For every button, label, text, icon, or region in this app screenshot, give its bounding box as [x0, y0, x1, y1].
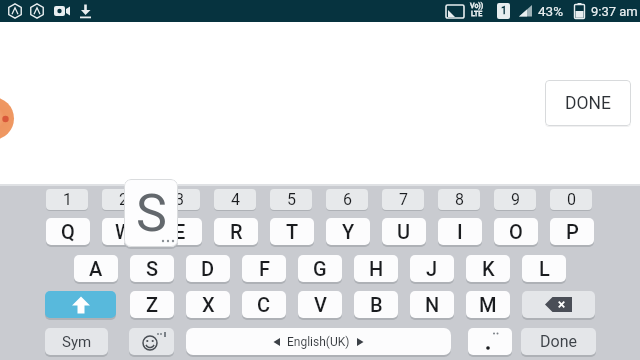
- staticText: L: [539, 257, 550, 280]
- staticText: V: [314, 293, 327, 316]
- button[interactable]: 1: [46, 189, 88, 210]
- staticText: DONE: [565, 93, 611, 114]
- button[interactable]: Done: [521, 328, 596, 355]
- staticText: English(UK): [287, 335, 350, 349]
- staticText: K: [482, 257, 495, 280]
- button[interactable]: P: [550, 218, 594, 245]
- button[interactable]: English(UK): [186, 328, 451, 355]
- button[interactable]: 0: [550, 189, 592, 210]
- staticText: 9:37 am: [591, 4, 638, 19]
- staticText: S: [136, 183, 167, 244]
- button[interactable]: 2: [102, 189, 144, 210]
- button[interactable]: U: [382, 218, 426, 245]
- staticText: 5: [287, 190, 296, 209]
- button[interactable]: Y: [326, 218, 370, 245]
- button[interactable]: A: [74, 255, 118, 282]
- staticText: 1: [501, 5, 507, 17]
- staticText: Done: [540, 332, 577, 351]
- staticText: R: [230, 220, 243, 243]
- staticText: 8: [455, 190, 464, 209]
- staticText: S: [146, 257, 159, 280]
- button[interactable]: G: [298, 255, 342, 282]
- button[interactable]: O: [494, 218, 538, 245]
- button[interactable]: 9: [494, 189, 536, 210]
- staticText: B: [370, 293, 383, 316]
- staticText: T: [286, 220, 299, 243]
- button[interactable]: Z: [130, 291, 174, 318]
- button[interactable]: D: [186, 255, 230, 282]
- staticText: LTE: [471, 10, 483, 18]
- staticText: 1: [63, 190, 72, 209]
- button[interactable]: F: [242, 255, 286, 282]
- staticText: J: [426, 257, 438, 280]
- staticText: O: [509, 220, 523, 243]
- button[interactable]: V: [298, 291, 342, 318]
- staticText: 43%: [538, 3, 564, 19]
- button[interactable]: [129, 328, 174, 355]
- staticText: M: [479, 293, 497, 316]
- staticText: F: [259, 257, 270, 280]
- button[interactable]: Q: [46, 218, 90, 245]
- button[interactable]: DONE: [545, 80, 631, 126]
- staticText: I: [457, 220, 463, 243]
- staticText: E: [174, 220, 186, 243]
- button[interactable]: K: [466, 255, 510, 282]
- button[interactable]: J: [410, 255, 454, 282]
- staticText: H: [369, 257, 384, 280]
- staticText: Y: [342, 220, 355, 243]
- staticText: Sym: [62, 333, 92, 351]
- staticText: Vo)): [470, 2, 484, 10]
- button[interactable]: 7: [382, 189, 424, 210]
- staticText: N: [425, 293, 440, 316]
- button[interactable]: ?: [468, 328, 512, 355]
- staticText: D: [201, 257, 215, 280]
- button[interactable]: [522, 291, 595, 318]
- button[interactable]: 6: [326, 189, 368, 210]
- staticText: U: [397, 220, 411, 243]
- button[interactable]: R: [214, 218, 258, 245]
- button[interactable]: Sym: [45, 328, 108, 355]
- staticText: 7: [399, 190, 408, 209]
- staticText: P: [566, 220, 579, 243]
- staticText: 2: [119, 190, 128, 209]
- button[interactable]: [45, 291, 116, 318]
- staticText: A: [89, 257, 103, 280]
- staticText: W: [115, 220, 133, 243]
- button[interactable]: 5: [270, 189, 312, 210]
- staticText: 6: [343, 190, 352, 209]
- staticText: 4: [231, 190, 240, 209]
- button[interactable]: N: [410, 291, 454, 318]
- button[interactable]: 8: [438, 189, 480, 210]
- button[interactable]: H: [354, 255, 398, 282]
- button[interactable]: L: [522, 255, 566, 282]
- button[interactable]: 3: [158, 189, 200, 210]
- staticText: 3: [175, 190, 184, 209]
- staticText: Z: [146, 293, 159, 316]
- button[interactable]: 4: [214, 189, 256, 210]
- button[interactable]: C: [242, 291, 286, 318]
- button[interactable]: W: [102, 218, 146, 245]
- staticText: X: [202, 293, 215, 316]
- staticText: 0: [567, 190, 576, 209]
- staticText: Q: [61, 220, 75, 243]
- button[interactable]: B: [354, 291, 398, 318]
- staticText: G: [313, 257, 327, 280]
- staticText: C: [257, 293, 271, 316]
- staticText: 9: [511, 190, 520, 209]
- button[interactable]: E: [158, 218, 202, 245]
- button[interactable]: X: [186, 291, 230, 318]
- button[interactable]: S: [130, 255, 174, 282]
- button[interactable]: T: [270, 218, 314, 245]
- button[interactable]: M: [466, 291, 510, 318]
- button[interactable]: I: [438, 218, 482, 245]
